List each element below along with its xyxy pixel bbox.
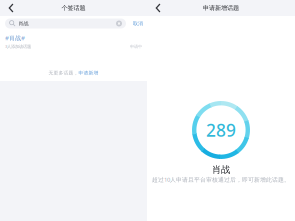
staticText: 个签话题 bbox=[61, 4, 85, 12]
staticText: 3人添加该话题 bbox=[5, 43, 31, 49]
staticText: 申请新增话题 bbox=[203, 4, 239, 12]
button[interactable]: #肖战# bbox=[0, 31, 147, 52]
button[interactable]: Back bbox=[151, 0, 165, 15]
button[interactable]: 取消 bbox=[129, 18, 147, 28]
staticText: 超过10人申请且平台审核通过后，即可新增此话题。 bbox=[152, 175, 290, 183]
staticText: 肖战 bbox=[18, 20, 28, 27]
staticText: 取消 bbox=[133, 20, 143, 27]
button[interactable]: Back bbox=[4, 0, 18, 15]
staticText: #肖战# bbox=[5, 34, 25, 42]
staticText: 289 bbox=[206, 118, 236, 141]
staticText: 肖战 bbox=[212, 164, 230, 175]
staticText: 申请新增 bbox=[78, 70, 98, 76]
button[interactable]: 申请新增 bbox=[78, 70, 98, 76]
staticText: 申请中 bbox=[130, 44, 142, 49]
staticText: 无更多话题， bbox=[48, 70, 78, 76]
